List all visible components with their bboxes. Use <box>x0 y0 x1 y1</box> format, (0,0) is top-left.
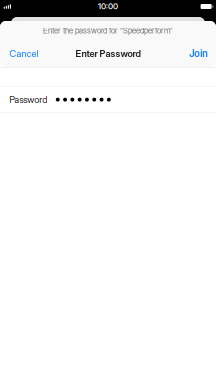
button[interactable]: Password <box>0 87 216 112</box>
button[interactable]: Cancel <box>4 44 43 63</box>
staticText: Enter Password <box>75 48 140 59</box>
staticText: 10:00 <box>98 2 118 11</box>
button[interactable]: Join <box>184 44 212 63</box>
staticText: Enter the password for “Speedperform” <box>43 26 173 35</box>
staticText: Join <box>189 48 208 59</box>
staticText: Cancel <box>9 48 38 59</box>
staticText: Password <box>9 94 47 105</box>
